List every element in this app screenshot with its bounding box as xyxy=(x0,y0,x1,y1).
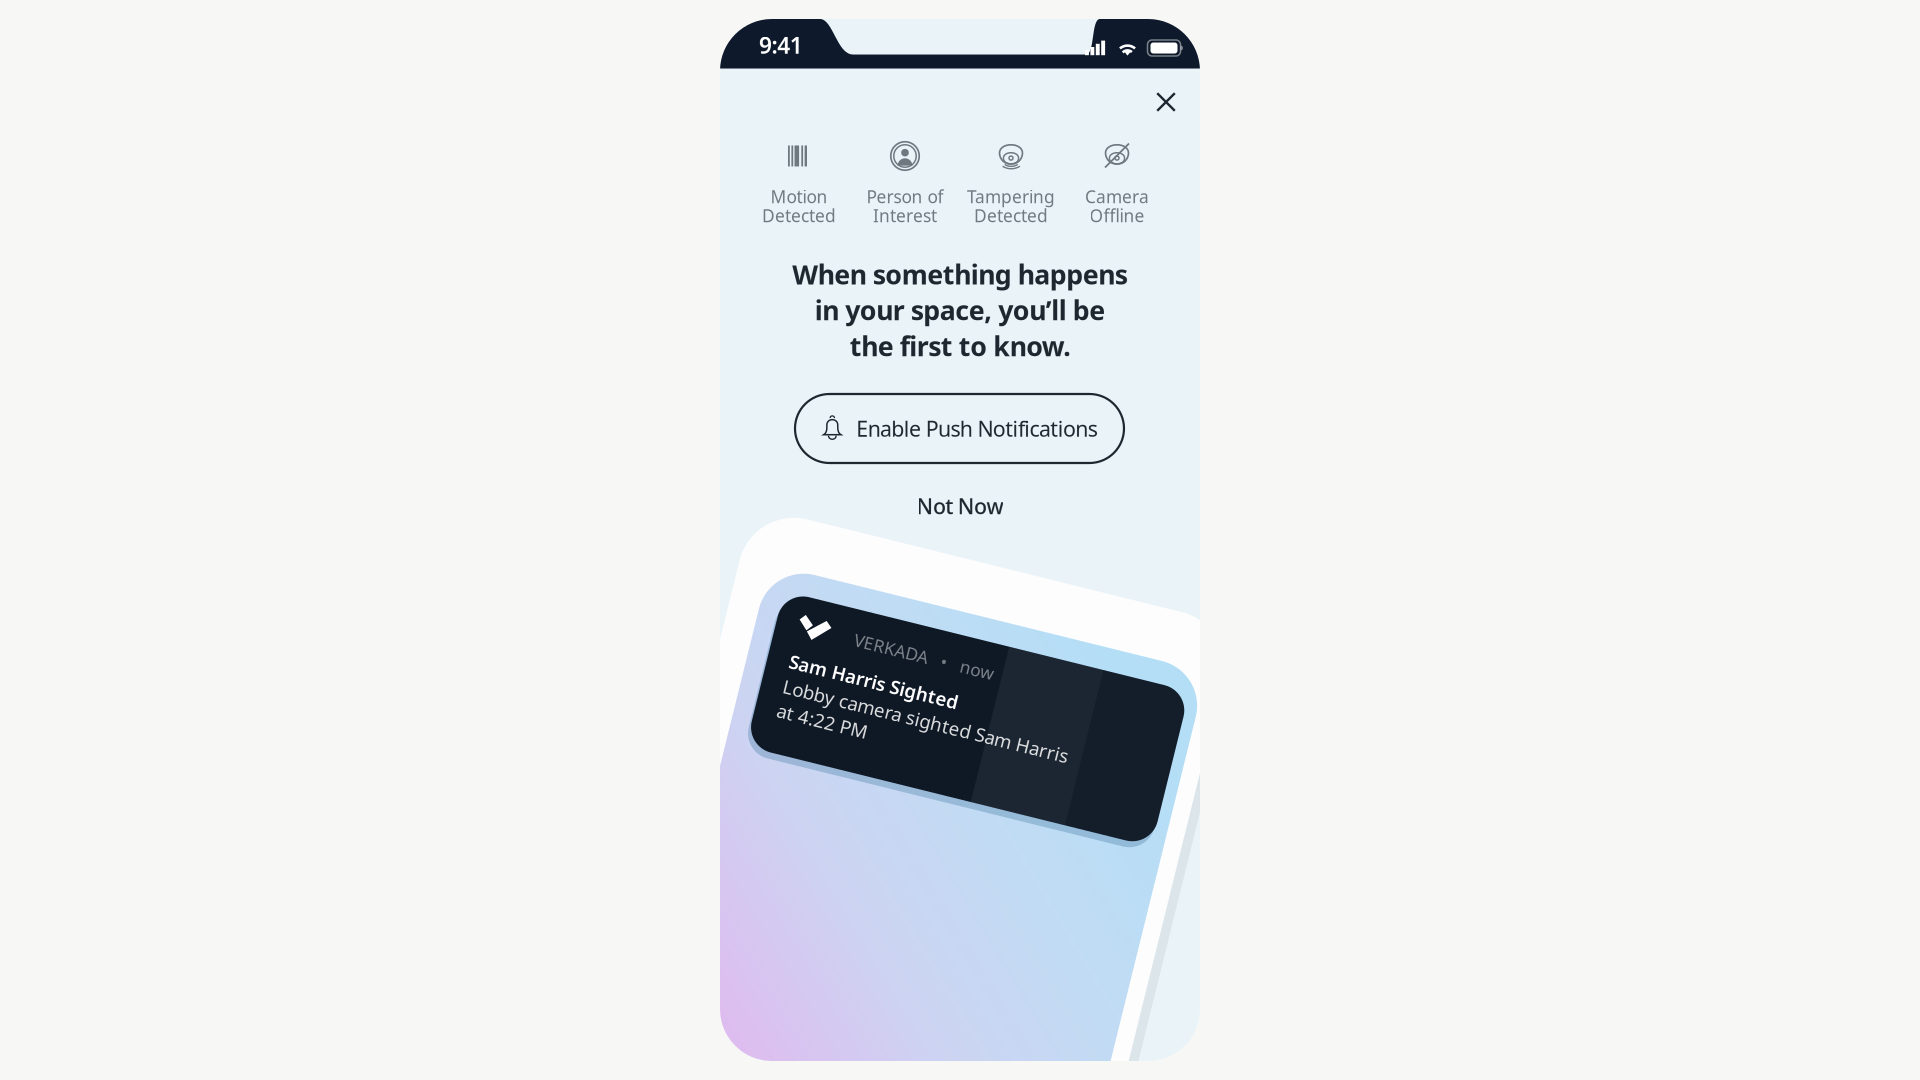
staticText: Sam Harris Sighted xyxy=(781,693,955,718)
staticText: Interest xyxy=(873,204,937,227)
staticText: the first to know. xyxy=(850,328,1070,364)
staticText: at 4:22 PM xyxy=(781,743,874,768)
button[interactable]: Close xyxy=(1144,80,1188,124)
staticText: Motion xyxy=(770,185,827,208)
staticText: now xyxy=(948,657,983,680)
staticText: Not Now xyxy=(917,492,1003,520)
staticText: in your space, you’ll be xyxy=(815,292,1105,328)
button[interactable]: Enable Push Notifications xyxy=(795,394,1124,463)
staticText: Enable Push Notifications xyxy=(856,414,1098,443)
staticText: VERKADA xyxy=(839,657,915,680)
staticText: 9:41 xyxy=(759,30,803,60)
staticText: When something happens xyxy=(792,256,1128,292)
staticText: Detected xyxy=(762,204,836,227)
staticText: Lobby camera sighted Sam Harris xyxy=(781,719,1075,743)
staticText: Detected xyxy=(974,204,1048,227)
staticText: Offline xyxy=(1089,204,1144,227)
staticText: Person of xyxy=(866,185,943,208)
staticText: Camera xyxy=(1085,185,1149,208)
button[interactable]: Not Now xyxy=(890,485,1030,527)
staticText: Tampering xyxy=(967,185,1055,208)
